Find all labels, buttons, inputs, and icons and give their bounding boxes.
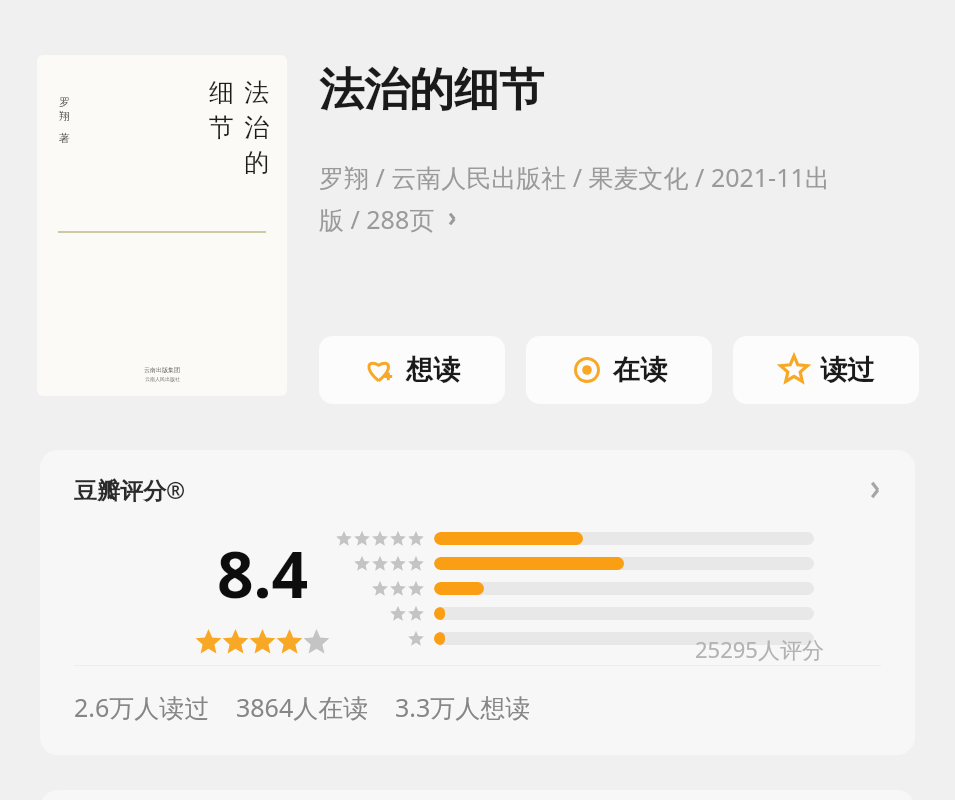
button[interactable]: 细 [37,55,287,396]
staticText: 罗翔 / 云南人民出版社 / 果麦文化 / 2021-11出 [319,160,830,194]
button[interactable]: 豆瓣评分® [74,474,889,505]
other: More rating details [861,476,889,504]
staticText: 罗 [59,95,70,109]
staticText: 著 [59,131,70,145]
staticText: 翔 [59,109,70,123]
staticText: 的 [244,147,269,178]
button[interactable]: 3864人在读 [236,690,369,724]
button[interactable]: 读过 [733,336,919,404]
button[interactable]: 想读 [319,336,505,404]
staticText: 法 [244,77,269,108]
staticText: 2.6万人读过 [74,690,210,724]
staticText: 想读 [406,353,460,387]
staticText: 细 [209,77,234,108]
staticText: 云南人民出版社 [145,376,180,382]
button[interactable]: 在读 [526,336,712,404]
staticText: 版 / 288页 [319,202,435,236]
staticText: 读过 [820,353,874,387]
staticText: 8.4 [217,530,309,617]
staticText: 25295人评分 [695,634,824,664]
staticText: 3864人在读 [236,690,369,724]
staticText: 法治的细节 [319,62,544,119]
staticText: 豆瓣评分® [74,474,186,505]
button[interactable]: 2.6万人读过 [74,690,210,724]
staticText: 在读 [613,353,667,387]
staticText: 3.3万人想读 [395,690,531,724]
staticText: 治 [244,112,269,143]
button[interactable]: 3.3万人想读 [395,690,531,724]
button[interactable]: 罗翔 / 云南人民出版社 / 果麦文化 / 2021-11出 [319,160,889,236]
staticText: 云南出版集团 [144,366,180,374]
staticText: 节 [209,112,234,143]
